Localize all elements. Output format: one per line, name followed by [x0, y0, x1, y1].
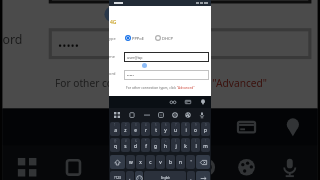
staticText: 6 [165, 123, 167, 127]
staticText: e [134, 127, 137, 134]
button[interactable]: # [121, 138, 130, 152]
staticText: l [195, 143, 197, 150]
button[interactable]: Clipboard [58, 152, 86, 180]
staticText: user@isp [127, 55, 143, 60]
staticText: v [159, 159, 162, 166]
staticText: d [134, 143, 137, 150]
staticText: h [164, 143, 167, 150]
button[interactable]: * [141, 138, 150, 152]
button[interactable]: Stickers [148, 152, 175, 180]
button[interactable]: 4 [141, 122, 150, 136]
button[interactable]: n [176, 155, 185, 169]
button[interactable]: Theme [183, 110, 192, 119]
staticText: 0 [205, 123, 207, 127]
staticText: English [161, 176, 170, 180]
button[interactable]: - [151, 138, 160, 152]
button[interactable]: 8 [181, 122, 190, 136]
staticText: For other connection types, click [126, 85, 177, 89]
button[interactable]: English [144, 171, 186, 180]
button[interactable]: Stickers [156, 110, 165, 119]
staticText: i [185, 127, 187, 134]
button[interactable]: Settings [170, 110, 179, 119]
button[interactable]: Clipboard [127, 110, 136, 119]
button[interactable]: @ [110, 138, 120, 152]
button[interactable]: Payment [231, 112, 259, 139]
button[interactable]: ••••• [49, 28, 311, 59]
button[interactable]: Apps [12, 152, 39, 180]
staticText: k [184, 143, 187, 150]
button[interactable]: . [187, 171, 195, 180]
staticText: 8 [185, 123, 187, 127]
button[interactable]: Settings [191, 152, 219, 180]
staticText: a [114, 127, 117, 134]
button[interactable]: 2 [121, 122, 130, 136]
button[interactable]: Shift [110, 155, 125, 169]
button[interactable]: Enter [196, 171, 210, 180]
staticText: ••••• [127, 73, 134, 78]
button[interactable]: ' [186, 155, 195, 169]
button[interactable]: 9 [191, 122, 200, 136]
button[interactable]: Voice [274, 152, 302, 180]
staticText: c [149, 159, 152, 166]
staticText: ord [2, 31, 24, 47]
button[interactable]: w [126, 155, 135, 169]
button[interactable]: PPPoE [125, 35, 144, 41]
button[interactable]: "Advanced" [212, 74, 268, 87]
button[interactable]: + [161, 138, 170, 152]
button[interactable]: 6 [161, 122, 170, 136]
button[interactable]: & [131, 138, 140, 152]
button[interactable]: 3 [131, 122, 140, 136]
staticText: & [135, 139, 137, 143]
staticText: DHCP [162, 36, 173, 41]
button[interactable]: Apps [112, 110, 121, 119]
button[interactable]: Backspace [196, 155, 210, 169]
button[interactable]: Voice [197, 110, 206, 119]
button[interactable]: Emoji [135, 171, 143, 180]
button[interactable]: Theme [231, 152, 259, 180]
button[interactable]: "Advanced" [177, 85, 195, 89]
button[interactable]: / [191, 138, 200, 152]
staticText: ) [185, 139, 186, 143]
staticText: ?123 [114, 176, 121, 180]
button[interactable]: ! [201, 138, 210, 152]
button[interactable]: ) [181, 138, 190, 152]
staticText: @ [114, 139, 117, 143]
button[interactable]: v [156, 155, 165, 169]
staticText: ••••• [58, 37, 80, 53]
button[interactable]: ••••• [124, 70, 209, 80]
button[interactable]: Location [198, 97, 207, 106]
button[interactable]: ?123 [110, 171, 125, 180]
staticText: . [190, 175, 192, 180]
staticText: g [154, 143, 157, 150]
staticText: y [164, 127, 167, 134]
button[interactable]: b [166, 155, 175, 169]
staticText: * [145, 139, 147, 143]
button[interactable]: DHCP [155, 35, 173, 41]
staticText: # [125, 139, 127, 143]
button[interactable]: , [126, 171, 134, 180]
button[interactable]: Location [277, 112, 305, 139]
button[interactable]: Search [185, 112, 212, 139]
button[interactable]: Payment [183, 97, 192, 106]
staticText: 1 [114, 123, 116, 127]
staticText: ' [190, 159, 192, 166]
staticText: 7 [175, 123, 177, 127]
staticText: b [169, 159, 172, 166]
button[interactable]: Translate [142, 110, 151, 119]
staticText: ord [109, 71, 116, 76]
button[interactable]: ( [171, 138, 180, 152]
staticText: ( [175, 139, 176, 143]
button[interactable]: 1 [110, 122, 120, 136]
button[interactable]: 7 [171, 122, 180, 136]
staticText: u [174, 127, 177, 134]
button[interactable]: 0 [201, 122, 210, 136]
button[interactable]: x [136, 155, 145, 169]
button[interactable]: c [146, 155, 155, 169]
button[interactable]: 5 [151, 122, 160, 136]
button[interactable]: Translate [104, 152, 132, 180]
staticText: 4G [110, 19, 117, 26]
staticText: q [114, 143, 117, 150]
button[interactable]: user@isp [49, 0, 311, 3]
button[interactable]: Search [168, 97, 177, 106]
button[interactable]: user@isp [124, 52, 209, 62]
